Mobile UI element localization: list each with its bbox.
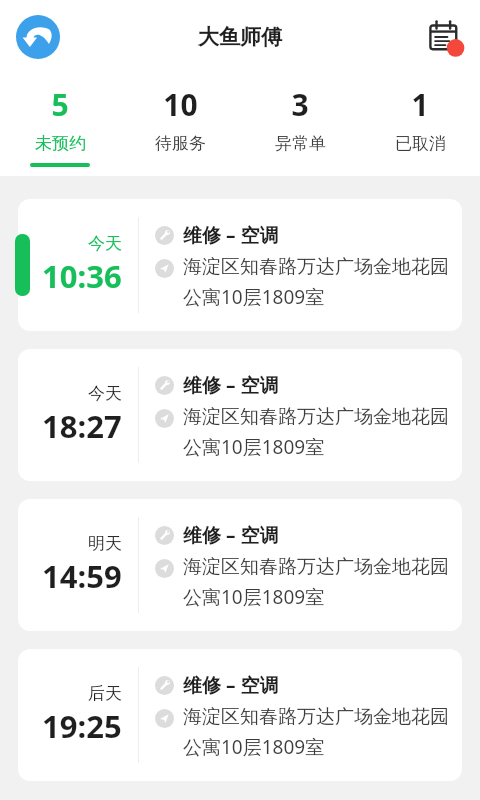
staticText: 维修 – 空调	[183, 522, 279, 548]
button[interactable]: 10	[120, 74, 240, 176]
staticText: 维修 – 空调	[183, 672, 279, 698]
staticText: 10:36	[42, 255, 122, 297]
staticText: 18:27	[42, 405, 122, 447]
staticText: 今天	[88, 383, 122, 404]
staticText: 5	[51, 84, 69, 125]
staticText: 异常单	[275, 133, 326, 154]
button[interactable]: App logo	[12, 11, 64, 63]
button[interactable]: 今天	[18, 349, 462, 481]
staticText: 维修 – 空调	[183, 372, 279, 398]
staticText: 待服务	[155, 133, 206, 154]
staticText: 已取消	[395, 133, 446, 154]
button[interactable]: 今天	[18, 199, 462, 331]
button[interactable]: 明天	[18, 499, 462, 631]
button[interactable]: Schedule, 5 new	[418, 11, 470, 63]
button[interactable]: 后天	[18, 649, 462, 781]
staticText: 海淀区知春路万达广场金地花园公寓10层1809室	[183, 555, 454, 609]
button[interactable]: 1	[360, 74, 480, 176]
staticText: 10	[163, 84, 198, 125]
staticText: 海淀区知春路万达广场金地花园公寓10层1809室	[183, 705, 454, 759]
staticText: 后天	[88, 683, 122, 704]
staticText: 今天	[88, 233, 122, 254]
staticText: 海淀区知春路万达广场金地花园公寓10层1809室	[183, 405, 454, 459]
staticText: 14:59	[42, 555, 122, 597]
staticText: 海淀区知春路万达广场金地花园公寓10层1809室	[183, 255, 454, 309]
staticText: 19:25	[42, 705, 122, 747]
staticText: 大鱼师傅	[198, 24, 282, 50]
staticText: 未预约	[35, 133, 86, 154]
staticText: 1	[411, 84, 429, 125]
button[interactable]: 5	[0, 74, 120, 176]
button[interactable]: 3	[240, 74, 360, 176]
staticText: 3	[291, 84, 309, 125]
staticText: 维修 – 空调	[183, 222, 279, 248]
staticText: 明天	[88, 533, 122, 554]
